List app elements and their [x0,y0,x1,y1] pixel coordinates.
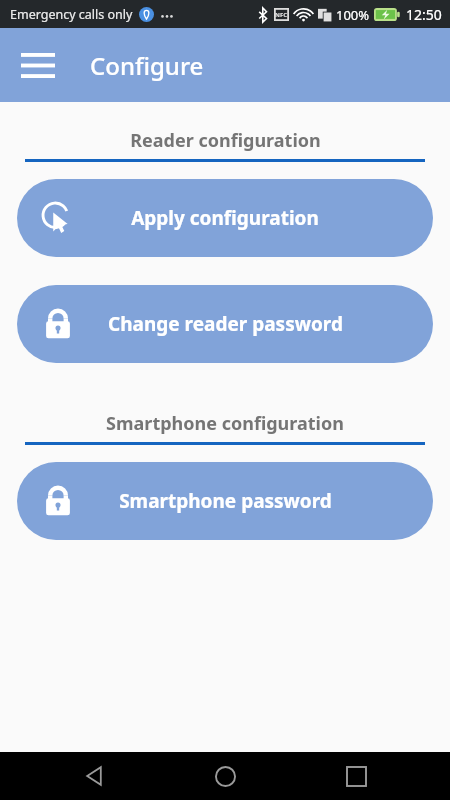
button[interactable]: Recent apps [332,752,380,800]
staticText: Smartphone password [119,488,332,514]
staticText: 12:50 [406,5,442,24]
staticText: Apply configuration [131,205,319,231]
button[interactable]: Change reader password [17,285,433,363]
button[interactable]: Smartphone password [17,462,433,540]
staticText: Reader configuration [130,128,321,153]
button[interactable]: Apply configuration [17,179,433,257]
staticText: Configure [90,49,204,82]
button[interactable]: Home [201,752,249,800]
staticText: Emergency calls only [10,6,133,23]
staticText: 100% [336,6,370,24]
staticText: Change reader password [108,311,343,337]
button[interactable]: Open navigation menu [10,37,66,93]
button[interactable]: Back [70,752,118,800]
staticText: Smartphone configuration [106,411,344,436]
staticText: NFC [275,11,288,19]
